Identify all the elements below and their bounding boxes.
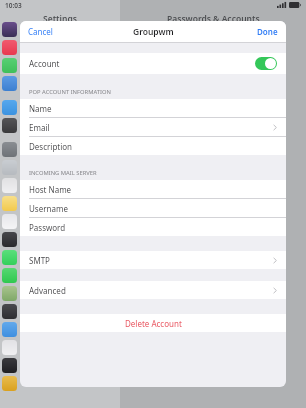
button[interactable]: Account [20, 53, 286, 74]
staticText: POP ACCOUNT INFORMATION [29, 88, 111, 96]
staticText: Cancel [28, 26, 53, 37]
button[interactable]: Advanced [20, 281, 286, 299]
button[interactable]: Password [20, 218, 286, 236]
staticText: INCOMING MAIL SERVER [29, 169, 97, 177]
staticText: Description [29, 141, 73, 152]
button[interactable]: Host Name [20, 180, 286, 198]
staticText: Email [29, 122, 50, 133]
staticText: Done [257, 26, 278, 37]
staticText: Name [29, 103, 52, 114]
staticText: 10:03 [5, 1, 22, 10]
staticText: Account [29, 58, 60, 69]
button[interactable]: SMTP [20, 251, 286, 269]
button[interactable]: Done [249, 21, 286, 42]
button[interactable]: Email [20, 118, 286, 136]
button[interactable]: Description [20, 137, 286, 155]
button[interactable]: Cancel [20, 21, 61, 42]
staticText: Settings [43, 13, 77, 25]
staticText: Host Name [29, 184, 72, 195]
staticText: Username [29, 203, 68, 214]
button[interactable]: Name [20, 99, 286, 117]
other: Account enabled [255, 57, 277, 70]
staticText: Groupwm [133, 26, 174, 38]
staticText: SMTP [29, 255, 50, 266]
staticText: Password [29, 222, 66, 233]
staticText: Delete Account [125, 318, 182, 329]
staticText: Passwords & Accounts [167, 13, 260, 25]
button[interactable]: Delete Account [20, 314, 286, 332]
button[interactable]: Username [20, 199, 286, 217]
staticText: Advanced [29, 285, 66, 296]
